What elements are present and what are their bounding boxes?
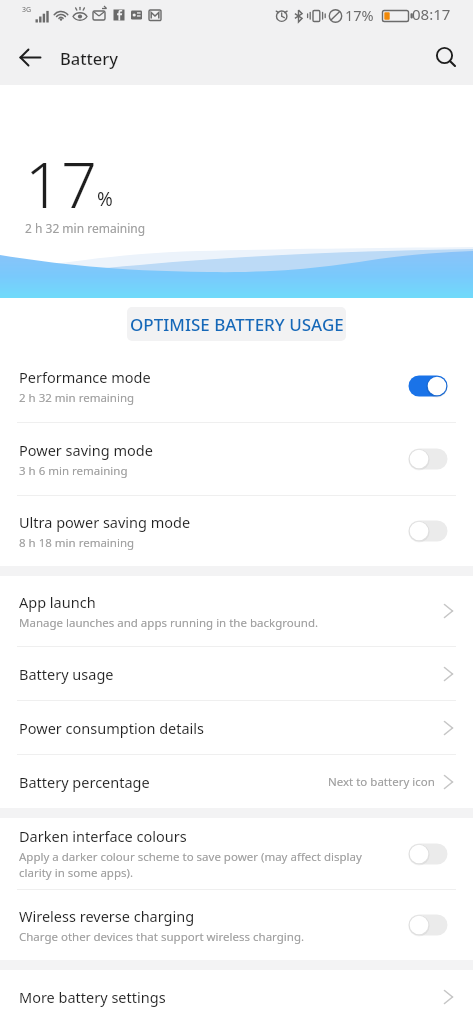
button[interactable]: More battery settings	[0, 970, 473, 1024]
button[interactable]: Toggle	[408, 375, 448, 397]
staticText: Power consumption details	[19, 718, 205, 738]
staticText: 2 h 32 min remaining	[19, 390, 135, 406]
button[interactable]: Wireless reverse charging	[0, 890, 473, 960]
staticText: 3 h 6 min remaining	[19, 463, 128, 479]
button[interactable]: Search	[419, 30, 473, 85]
staticText: 3G	[22, 5, 32, 15]
staticText: Manage launches and apps running in the …	[19, 615, 319, 631]
button[interactable]: Power saving mode	[0, 423, 473, 495]
staticText: Ultra power saving mode	[19, 512, 191, 532]
staticText: 8 h 18 min remaining	[19, 535, 135, 551]
button[interactable]: OPTIMISE BATTERY USAGE	[127, 307, 346, 341]
button[interactable]: Ultra power saving mode	[0, 496, 473, 566]
staticText: More battery settings	[19, 987, 166, 1007]
staticText: 17	[25, 141, 97, 227]
staticText: Charge other devices that support wirele…	[19, 929, 305, 945]
staticText: Battery	[60, 47, 119, 69]
staticText: Wireless reverse charging	[19, 906, 195, 926]
button[interactable]: Toggle	[408, 520, 448, 542]
staticText: 17%	[345, 5, 374, 25]
staticText: Battery usage	[19, 664, 114, 684]
staticText: OPTIMISE BATTERY USAGE	[130, 313, 344, 336]
staticText: Darken interface colours	[19, 826, 187, 846]
button[interactable]: Toggle	[408, 448, 448, 470]
button[interactable]: Darken interface colours	[0, 818, 473, 889]
button[interactable]: Battery usage	[0, 647, 473, 700]
button[interactable]: App launch	[0, 576, 473, 646]
staticText: %	[97, 186, 113, 212]
staticText: Battery percentage	[19, 772, 150, 792]
staticText: 08:17	[412, 4, 451, 24]
button[interactable]: Back	[0, 30, 60, 85]
staticText: App launch	[19, 592, 96, 612]
staticText: Next to battery icon	[328, 774, 435, 790]
staticText: Performance mode	[19, 367, 151, 387]
staticText: 2 h 32 min remaining	[25, 220, 146, 236]
staticText: Apply a darker colour scheme to save pow…	[19, 849, 362, 881]
button[interactable]: Toggle	[408, 843, 448, 865]
staticText: Power saving mode	[19, 440, 153, 460]
button[interactable]: Toggle	[408, 914, 448, 936]
button[interactable]: Battery percentage	[0, 755, 473, 808]
button[interactable]: Performance mode	[0, 350, 473, 422]
button[interactable]: Power consumption details	[0, 701, 473, 754]
